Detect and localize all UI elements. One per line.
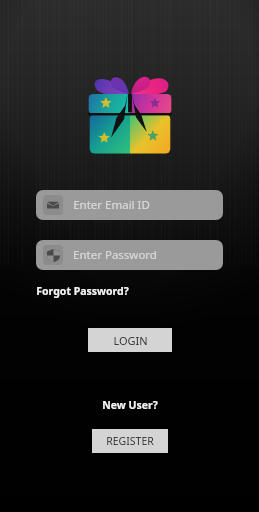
- staticText: LOGIN: [113, 333, 148, 348]
- staticText: REGISTER: [106, 434, 154, 448]
- button[interactable]: Enter Email ID: [36, 190, 223, 220]
- staticText: New User?: [102, 398, 158, 412]
- staticText: Forgot Password?: [36, 284, 129, 298]
- staticText: Enter Password: [73, 247, 157, 263]
- button[interactable]: Forgot Password?: [34, 282, 131, 300]
- button[interactable]: LOGIN: [88, 328, 172, 352]
- staticText: Enter Email ID: [73, 197, 150, 213]
- button[interactable]: Enter Password: [36, 240, 223, 270]
- button[interactable]: REGISTER: [92, 429, 168, 453]
